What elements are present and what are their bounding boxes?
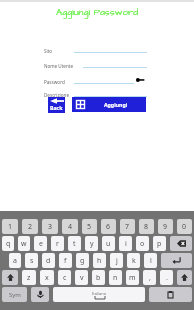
button[interactable]: 7 [120, 219, 135, 234]
button[interactable]: r [51, 236, 64, 251]
button[interactable]: Aggiungi [72, 97, 146, 112]
button[interactable]: 2 [22, 219, 38, 234]
button[interactable]: h [93, 253, 106, 268]
staticText: z [27, 273, 31, 283]
staticText: v [80, 273, 84, 283]
button[interactable]: shift [2, 270, 18, 285]
staticText: i [125, 239, 127, 249]
staticText: l [150, 256, 152, 266]
button[interactable]: shift [177, 270, 192, 285]
staticText: Password [44, 79, 65, 85]
staticText: m [129, 273, 136, 283]
staticText: k [132, 256, 136, 266]
staticText: a [13, 256, 17, 266]
staticText: Italiano [92, 291, 107, 296]
button[interactable]: m [126, 270, 139, 285]
staticText: q [6, 239, 11, 249]
button[interactable]: Back [48, 97, 65, 113]
button[interactable]: j [110, 253, 123, 268]
staticText: o [140, 239, 145, 249]
button[interactable]: q [2, 236, 14, 251]
button[interactable]: u [102, 236, 115, 251]
staticText: Descrizione [44, 92, 69, 98]
staticText: Sito [44, 48, 53, 54]
button[interactable]: e [34, 236, 47, 251]
staticText: 7 [125, 222, 130, 232]
button[interactable]: 5 [82, 219, 97, 234]
staticText: n [113, 273, 118, 283]
button[interactable]: g [76, 253, 89, 268]
staticText: d [46, 256, 51, 266]
button[interactable]: v [75, 270, 88, 285]
staticText: c [63, 273, 67, 283]
staticText: y [90, 239, 94, 249]
button[interactable]: enter [161, 253, 192, 268]
button[interactable]: o [136, 236, 149, 251]
staticText: b [96, 273, 101, 283]
staticText: f [64, 256, 67, 266]
button[interactable]: Sym [2, 287, 27, 302]
button[interactable]: i [119, 236, 132, 251]
button[interactable]: Italiano [53, 287, 145, 302]
staticText: Nome Utente [44, 63, 74, 69]
staticText: . [166, 273, 168, 283]
button[interactable]: 9 [158, 219, 173, 234]
staticText: 4 [68, 222, 73, 232]
button[interactable]: l [144, 253, 157, 268]
button[interactable]: z [22, 270, 36, 285]
button[interactable]: b [92, 270, 105, 285]
staticText: j [116, 256, 118, 266]
button[interactable]: bksp [170, 236, 192, 251]
staticText: s [30, 256, 34, 266]
staticText: g [80, 256, 85, 266]
staticText: 6 [106, 222, 111, 232]
staticText: x [45, 273, 49, 283]
staticText: t [73, 239, 76, 249]
staticText: u [106, 239, 111, 249]
staticText: 5 [87, 222, 92, 232]
button[interactable]: n [109, 270, 122, 285]
button[interactable]: d [42, 253, 55, 268]
button[interactable]: 6 [101, 219, 116, 234]
staticText: 9 [163, 222, 168, 232]
button[interactable]: . [160, 270, 173, 285]
button[interactable]: x [40, 270, 54, 285]
button[interactable]: 0 [177, 219, 192, 234]
staticText: p [157, 239, 162, 249]
staticText: , [149, 273, 151, 283]
staticText: Back [50, 104, 63, 111]
button[interactable]: Clipboard [149, 287, 192, 302]
button[interactable]: t [68, 236, 81, 251]
button[interactable]: 1 [2, 219, 18, 234]
staticText: Sym [9, 291, 21, 299]
staticText: Aggiungi Password [56, 5, 139, 18]
button[interactable]: Toggle password visibility [135, 75, 147, 84]
button[interactable]: s [25, 253, 38, 268]
button[interactable]: 4 [62, 219, 78, 234]
button[interactable]: y [85, 236, 98, 251]
staticText: r [56, 239, 59, 249]
button[interactable]: 3 [42, 219, 58, 234]
staticText: 8 [144, 222, 149, 232]
button[interactable]: , [143, 270, 156, 285]
staticText: 3 [48, 222, 53, 232]
button[interactable]: f [59, 253, 72, 268]
staticText: 2 [28, 222, 33, 232]
button[interactable]: k [127, 253, 140, 268]
button[interactable]: p [153, 236, 166, 251]
staticText: w [21, 239, 27, 249]
staticText: 0 [182, 222, 187, 232]
button[interactable]: a [9, 253, 21, 268]
button[interactable]: Voice input [31, 287, 49, 302]
button[interactable]: c [58, 270, 71, 285]
staticText: Aggiungi [104, 101, 128, 108]
staticText: h [97, 256, 102, 266]
staticText: 1 [8, 222, 13, 232]
button[interactable]: 8 [139, 219, 154, 234]
button[interactable]: w [18, 236, 30, 251]
staticText: e [39, 239, 43, 249]
